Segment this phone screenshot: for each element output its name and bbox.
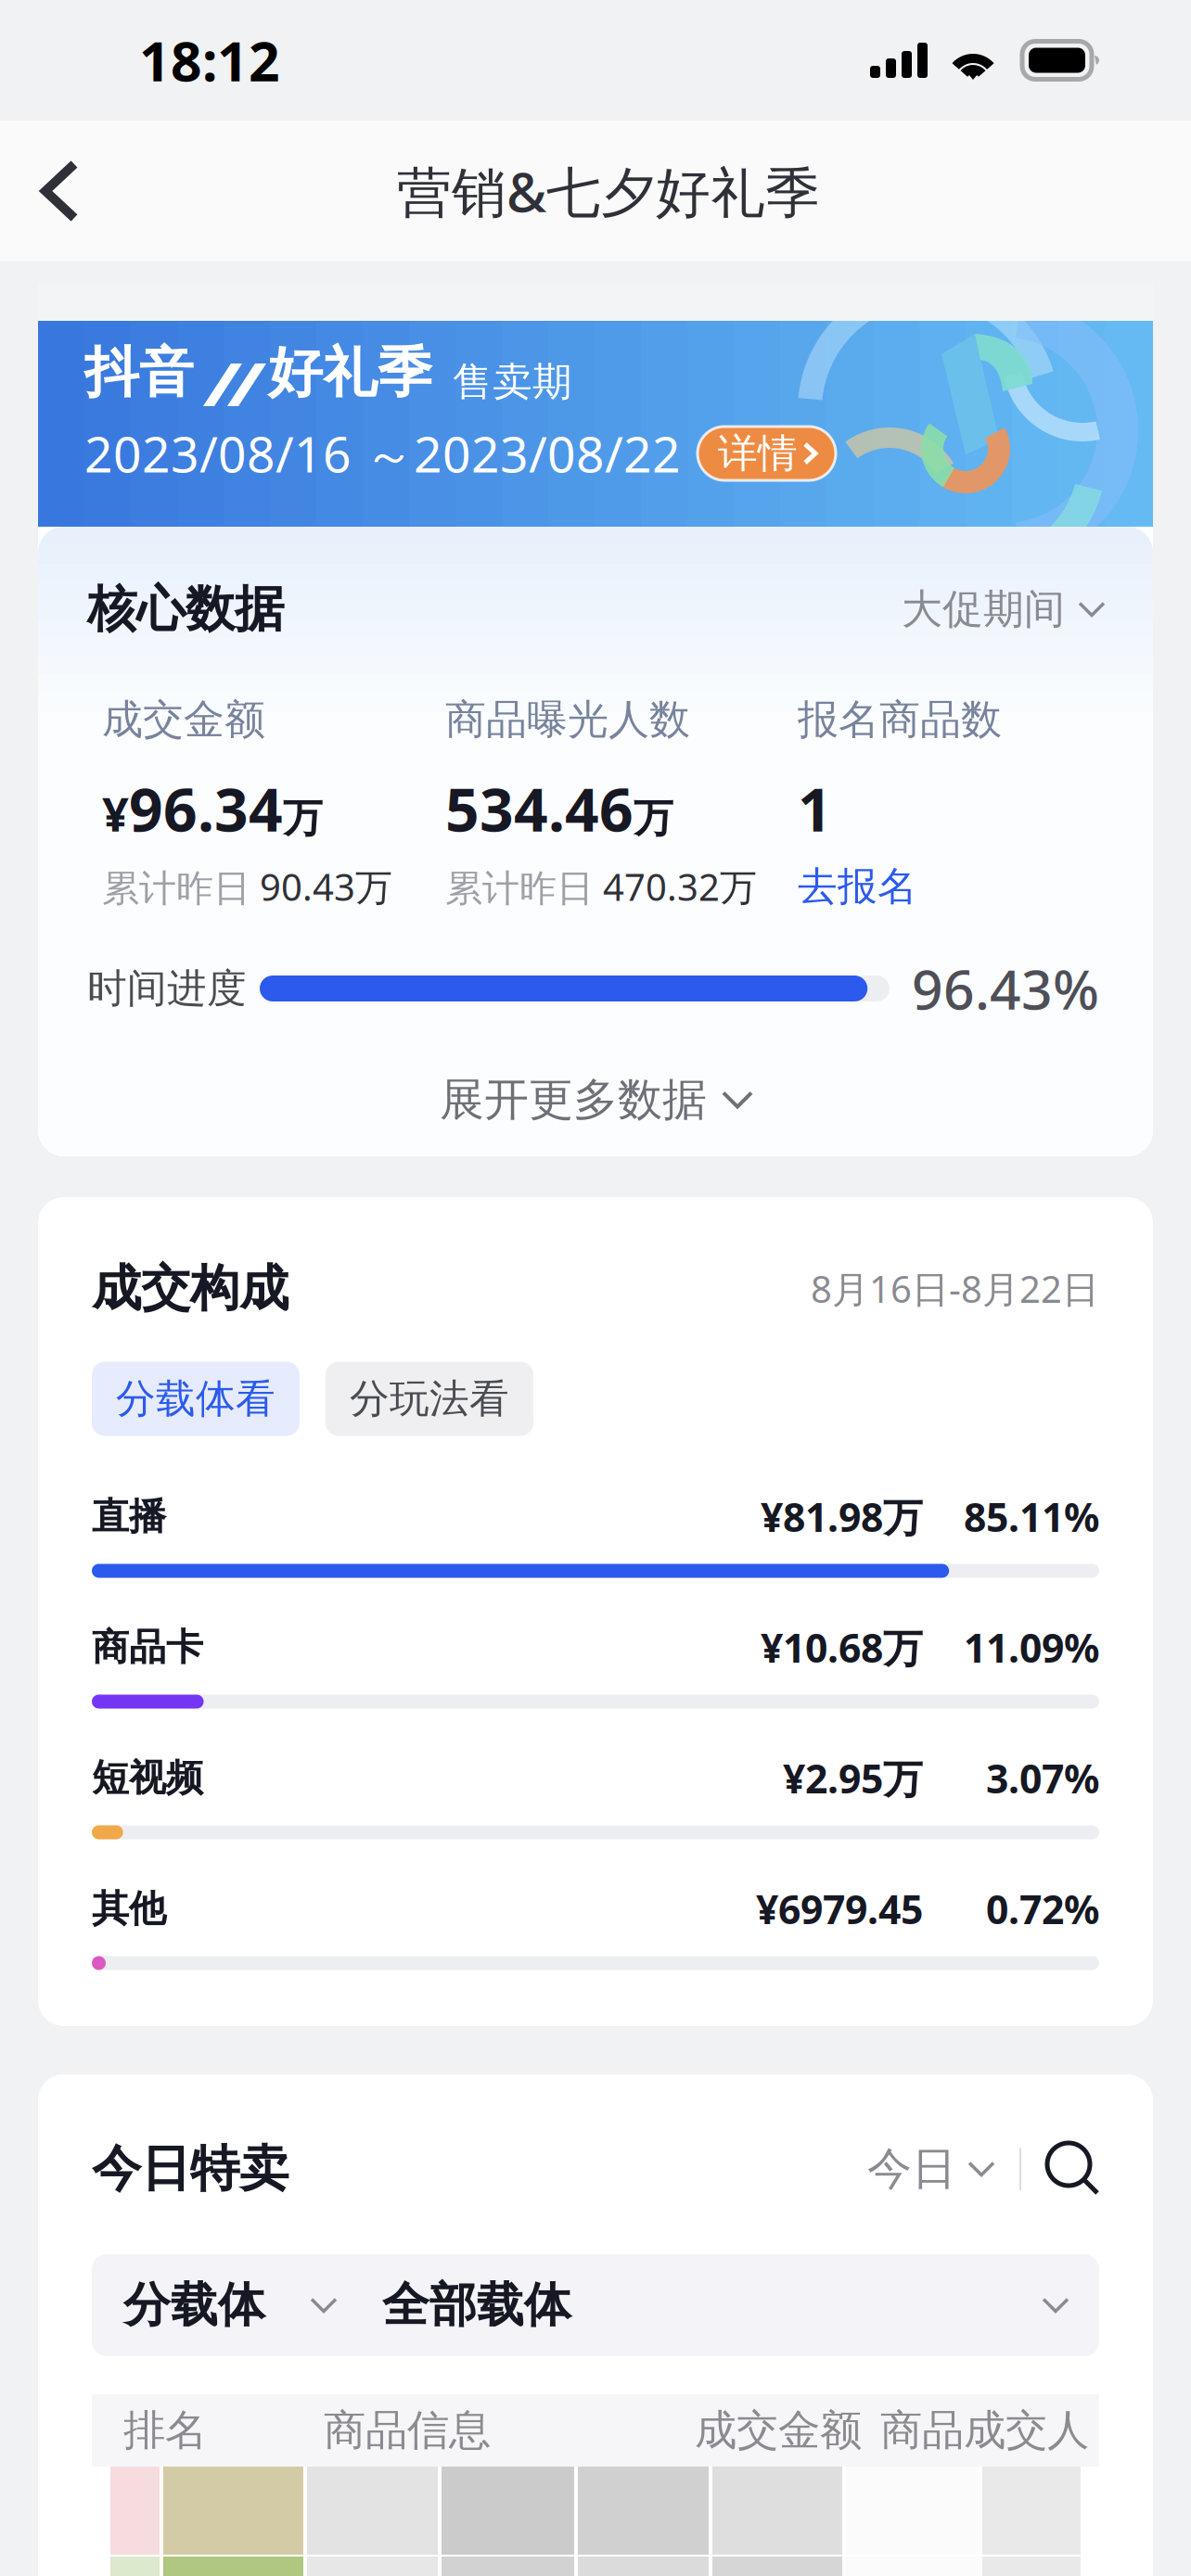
- staticText: 85.11%: [964, 1490, 1099, 1543]
- staticText: 1: [798, 769, 832, 848]
- staticText: 成交金额: [102, 695, 265, 745]
- staticText: 好礼季: [268, 339, 432, 406]
- staticText: 核心数据: [87, 579, 284, 640]
- button[interactable]: 今日: [867, 2143, 993, 2195]
- button[interactable]: 详情: [698, 427, 836, 480]
- staticText: 全部载体: [382, 2276, 571, 2334]
- staticText: 商品曝光人数: [445, 695, 690, 745]
- staticText: 营销&七夕好礼季: [397, 155, 820, 227]
- staticText: 分载体: [123, 2276, 265, 2334]
- staticText: 96.34: [129, 769, 283, 848]
- staticText: 万: [634, 794, 673, 843]
- button[interactable]: Back: [0, 126, 111, 256]
- button[interactable]: 去报名: [798, 862, 917, 911]
- staticText: 分玩法看: [350, 1375, 509, 1423]
- staticText: 售卖期: [453, 358, 572, 406]
- staticText: 今日特卖: [92, 2139, 288, 2199]
- staticText: 分载体看: [116, 1375, 275, 1423]
- staticText: 累计昨日: [102, 866, 250, 911]
- staticText: 534.46: [445, 769, 634, 848]
- staticText: 470.32万: [603, 862, 757, 911]
- staticText: 其他: [92, 1886, 166, 1932]
- staticText: ¥2.95万: [783, 1752, 923, 1804]
- staticText: 去报名: [798, 862, 917, 911]
- staticText: 96.43%: [912, 952, 1099, 1025]
- staticText: 18:12: [139, 24, 280, 96]
- staticText: 报名商品数: [798, 695, 1002, 745]
- staticText: ¥81.98万: [761, 1490, 923, 1543]
- staticText: 万: [283, 794, 323, 843]
- staticText: 3.07%: [986, 1752, 1099, 1804]
- staticText: 时间进度: [87, 964, 247, 1013]
- staticText: 商品卡: [92, 1625, 203, 1670]
- staticText: 商品信息: [324, 2405, 491, 2456]
- staticText: 11.09%: [964, 1621, 1099, 1674]
- staticText: 商品成交人: [880, 2405, 1089, 2456]
- staticText: 短视频: [92, 1755, 203, 1801]
- staticText: 抖音: [84, 339, 194, 406]
- staticText: ¥10.68万: [761, 1621, 923, 1674]
- staticText: 今日: [867, 2142, 956, 2196]
- staticText: 大促期间: [902, 584, 1065, 634]
- button[interactable]: 展开更多数据: [87, 1074, 1104, 1126]
- staticText: 成交构成: [92, 1258, 288, 1319]
- button[interactable]: Search: [1047, 2143, 1099, 2195]
- staticText: 2023/08/16 ～2023/08/22: [84, 421, 681, 486]
- button[interactable]: 分玩法看: [326, 1362, 533, 1436]
- staticText: 累计昨日: [445, 866, 594, 911]
- staticText: 0.72%: [986, 1883, 1099, 1935]
- staticText: ¥: [102, 782, 129, 845]
- staticText: 90.43万: [260, 862, 392, 911]
- button[interactable]: 分载体看: [92, 1362, 300, 1436]
- staticText: 排名: [123, 2405, 207, 2456]
- staticText: 直播: [92, 1494, 166, 1539]
- staticText: 成交金额: [695, 2405, 862, 2456]
- staticText: ¥6979.45: [756, 1883, 923, 1935]
- staticText: 8月16日-8月22日: [811, 1264, 1099, 1313]
- button[interactable]: 大促期间: [902, 583, 1104, 635]
- staticText: 详情: [718, 429, 798, 478]
- staticText: 展开更多数据: [440, 1072, 707, 1127]
